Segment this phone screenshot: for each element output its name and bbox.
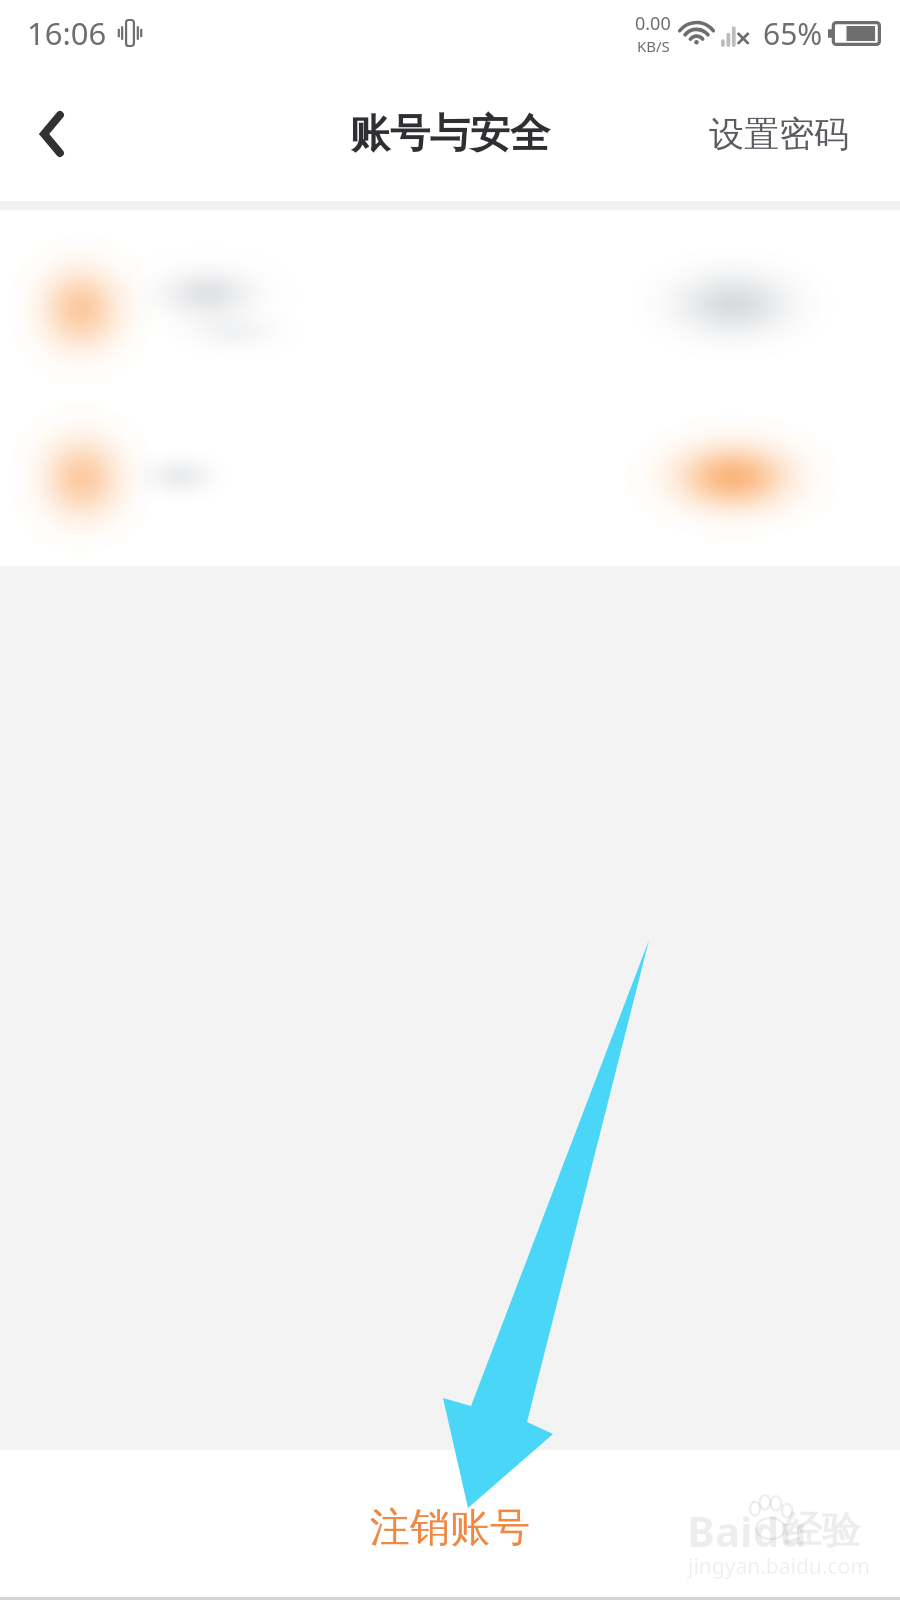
staticText: 注销账号: [370, 1502, 530, 1552]
button[interactable]: 注销账号: [310, 1482, 590, 1572]
staticText: 设置密码: [709, 112, 849, 156]
staticText: Baidu: [687, 1502, 807, 1559]
staticText: jingyan.baidu.com: [688, 1552, 870, 1581]
staticText: 账号与安全: [350, 108, 550, 158]
staticText: 经验: [784, 1506, 860, 1554]
staticText: 16:06: [27, 12, 107, 54]
button[interactable]: Back: [12, 94, 92, 174]
button[interactable]: 设置密码: [685, 92, 900, 176]
staticText: 0.00: [635, 11, 671, 36]
button[interactable]: [0, 388, 900, 566]
staticText: KB/S: [637, 36, 670, 56]
staticText: 65%: [763, 13, 823, 54]
button[interactable]: [0, 210, 900, 388]
